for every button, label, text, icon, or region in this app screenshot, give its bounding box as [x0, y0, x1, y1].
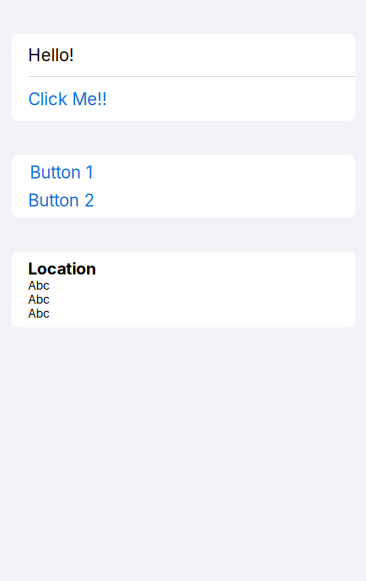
staticText: Abc [28, 278, 50, 292]
staticText: Button 2 [28, 190, 94, 211]
button[interactable]: Button 1 [11, 158, 355, 186]
staticText: Button 1 [30, 162, 93, 183]
button[interactable]: Click Me!! [11, 77, 355, 121]
staticText: Location [28, 259, 96, 278]
staticText: Hello! [28, 45, 74, 65]
staticText: Abc [28, 292, 50, 306]
button[interactable]: Button 2 [11, 186, 355, 214]
staticText: Abc [28, 306, 50, 320]
staticText: Click Me!! [28, 89, 107, 109]
